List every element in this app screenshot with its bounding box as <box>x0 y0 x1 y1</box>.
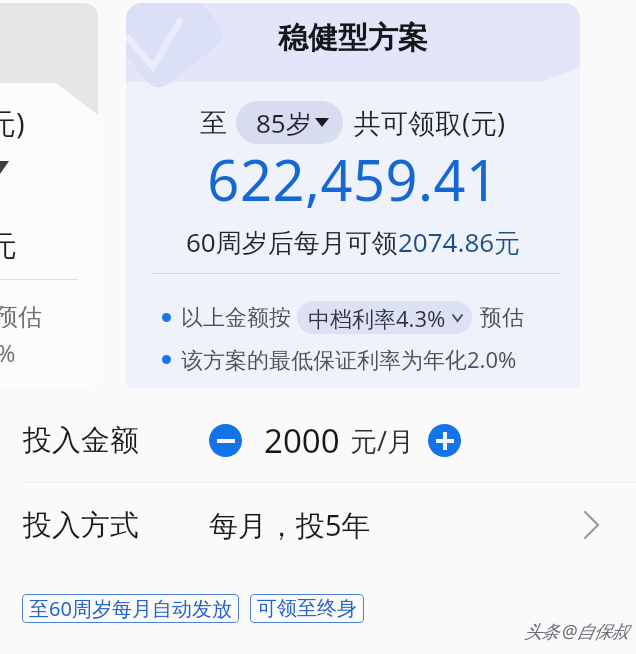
staticText: 预估 <box>480 304 524 332</box>
staticText: 以上金额按 <box>181 304 291 332</box>
staticText: 元) <box>0 103 25 143</box>
button[interactable]: Increase amount <box>428 424 461 457</box>
staticText: 2000 <box>264 418 340 463</box>
staticText: 中档利率4.3% <box>308 303 446 333</box>
button[interactable]: 中档利率4.3% <box>297 301 472 334</box>
staticText: 622,459.41 <box>126 141 580 217</box>
staticText: 稳健型方案 <box>126 19 580 57</box>
staticText: 元 <box>0 228 17 265</box>
staticText: 85岁 <box>256 105 312 141</box>
button[interactable]: 85岁 <box>236 101 343 144</box>
button[interactable]: 可领至终身 <box>250 594 364 623</box>
staticText: 2074.86元 <box>398 224 521 260</box>
button[interactable]: 投入方式 <box>0 483 636 567</box>
button[interactable]: 至60周岁每月自动发放 <box>22 594 239 623</box>
staticText: 60周岁后每月可领 <box>186 224 398 260</box>
staticText: 可领至终身 <box>257 596 357 621</box>
staticText: 至 <box>200 106 227 140</box>
staticText: 至60周岁每月自动发放 <box>29 595 232 622</box>
staticText: 3% <box>0 337 16 368</box>
staticText: 头条 @自保叔 <box>524 619 628 644</box>
staticText: 投入方式 <box>23 507 139 544</box>
staticText: 共可领取(元) <box>354 104 506 141</box>
button[interactable]: Decrease amount <box>209 424 242 457</box>
staticText: 预估 <box>0 302 42 332</box>
staticText: 元/月 <box>350 422 415 459</box>
staticText: 投入金额 <box>23 422 139 459</box>
staticText: 该方案的最低保证利率为年化2.0% <box>181 344 517 374</box>
staticText: 每月，投5年 <box>209 505 371 545</box>
